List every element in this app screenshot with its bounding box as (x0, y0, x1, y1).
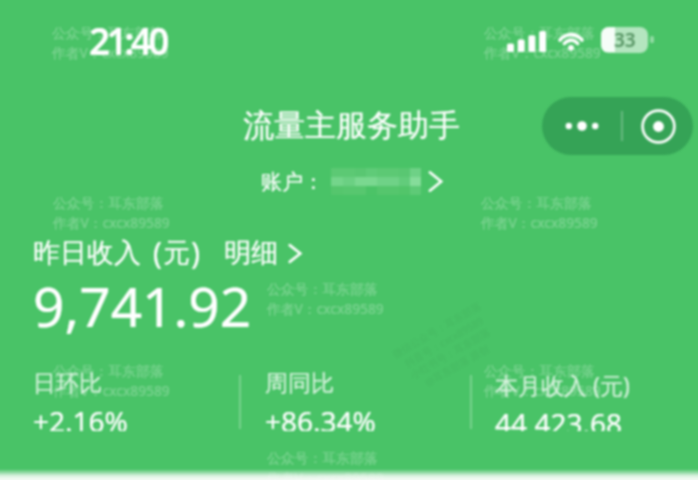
staticText: 33 (614, 27, 636, 53)
staticText: 公众号：耳东部落 (53, 195, 164, 212)
staticText: 本月收入 (元) (495, 369, 630, 400)
staticText: 明细 (224, 236, 278, 270)
staticText: 作者V：cxcx89589 (53, 213, 170, 232)
button[interactable]: 本月收入 (元) (495, 369, 665, 431)
other: More options (542, 97, 621, 155)
staticText: 公众号：耳东部落 (267, 281, 378, 298)
staticText: 账户： (261, 169, 324, 195)
staticText: 公众号：耳东部落 (53, 363, 164, 380)
staticText: 作者V：cxcx89589 (53, 381, 170, 400)
staticText: 作者V：cxcx89589 (52, 43, 169, 62)
staticText: +86.34% (265, 402, 376, 431)
staticText: 作者V：cxcx89589 (267, 468, 384, 480)
staticText: 作者V：cxcx89589 (484, 43, 601, 62)
staticText: +2.16% (33, 402, 128, 431)
staticText: 作者V：cxcx89589 (267, 299, 384, 318)
staticText: ( (153, 232, 162, 273)
staticText: 公众号：耳东部落 (484, 25, 595, 42)
staticText: 公众号：耳东部落 (481, 195, 592, 212)
staticText: 作者V：cxcx89589 (484, 381, 601, 400)
button[interactable]: 日环比 (33, 369, 228, 431)
staticText: 9,741.92 (33, 268, 252, 343)
staticText: 日环比 (33, 369, 102, 398)
staticText: 流量主服务助手 (243, 106, 460, 145)
staticText: 昨日收入 (33, 236, 141, 270)
button[interactable]: 账户： (261, 168, 443, 195)
button[interactable]: More options (542, 97, 693, 155)
staticText: ) (191, 232, 200, 273)
staticText: @耳东部落 原创 (422, 341, 492, 389)
staticText: 公众号：耳东部落 (52, 25, 163, 42)
staticText: 公众号：耳东部落 (267, 450, 378, 467)
staticText: 元 (163, 236, 190, 270)
staticText: 公众号：耳东部落 (484, 363, 595, 380)
staticText: 小红书号：耳东部落 (408, 325, 492, 382)
staticText: 周同比 (265, 369, 334, 398)
staticText: 作者V：cxcx89589 (481, 213, 598, 232)
other: Close mini program (623, 97, 693, 155)
button[interactable]: 明细 (224, 236, 302, 270)
button[interactable]: 周同比 (265, 369, 460, 431)
staticText: 21:40 (89, 15, 166, 65)
staticText: 44,423.68 (495, 404, 623, 431)
